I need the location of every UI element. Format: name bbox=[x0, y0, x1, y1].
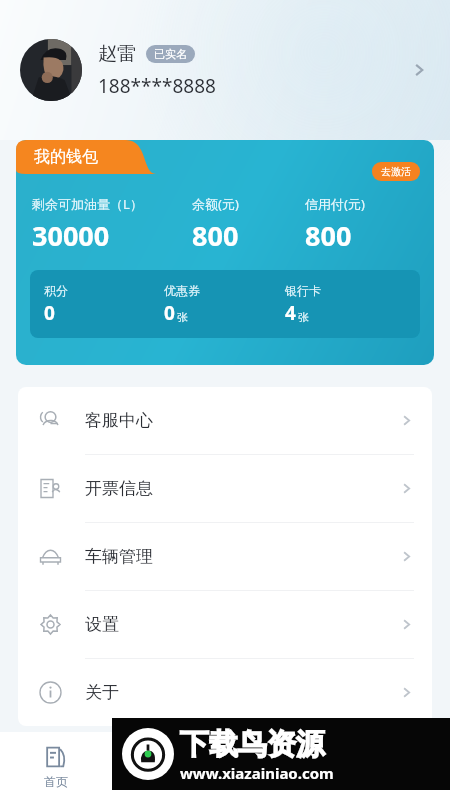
staticText: 4 bbox=[285, 300, 296, 326]
other: 个人资料 bbox=[404, 55, 434, 85]
button[interactable]: 设置 bbox=[18, 591, 432, 658]
staticText: 已实名 bbox=[154, 47, 187, 61]
button[interactable]: 赵雷 bbox=[0, 0, 450, 140]
button[interactable]: 首页 bbox=[0, 732, 112, 800]
button[interactable]: 关于 bbox=[18, 659, 432, 726]
staticText: 优惠券 bbox=[164, 283, 200, 298]
button[interactable]: 客服中心 bbox=[18, 387, 432, 454]
staticText: 客服中心 bbox=[85, 410, 153, 431]
staticText: 剩余可加油量（L） bbox=[32, 195, 143, 213]
staticText: 设置 bbox=[85, 614, 119, 635]
staticText: 银行卡 bbox=[285, 283, 321, 298]
staticText: 首页 bbox=[44, 774, 68, 789]
staticText: 0 bbox=[44, 300, 55, 326]
staticText: 地图 bbox=[156, 774, 180, 789]
staticText: 去激活 bbox=[381, 165, 411, 178]
staticText: 188****8888 bbox=[98, 73, 216, 99]
staticText: 行车 bbox=[269, 774, 293, 789]
staticText: 800 bbox=[192, 217, 239, 254]
button[interactable]: 车辆管理 bbox=[18, 523, 432, 590]
button[interactable]: 去激活 bbox=[16, 140, 434, 365]
staticText: 开票信息 bbox=[85, 478, 153, 499]
staticText: 30000 bbox=[32, 217, 110, 254]
button[interactable]: 开票信息 bbox=[18, 455, 432, 522]
button[interactable]: 我的 bbox=[337, 732, 450, 800]
staticText: 余额(元) bbox=[192, 195, 239, 213]
button[interactable]: 去激活 bbox=[372, 162, 420, 181]
staticText: 我的钱包 bbox=[34, 147, 98, 167]
button[interactable]: 地图 bbox=[112, 732, 224, 800]
staticText: 关于 bbox=[85, 682, 119, 703]
staticText: www.xiazainiao.com bbox=[180, 763, 334, 783]
staticText: 0 bbox=[164, 300, 175, 326]
staticText: 车辆管理 bbox=[85, 546, 153, 567]
staticText: 下载鸟资源 bbox=[180, 726, 325, 763]
button[interactable]: 行车 bbox=[224, 732, 337, 800]
staticText: 信用付(元) bbox=[305, 195, 365, 213]
staticText: 800 bbox=[305, 217, 352, 254]
staticText: 积分 bbox=[44, 283, 68, 298]
staticText: 张 bbox=[298, 310, 309, 324]
staticText: 赵雷 bbox=[98, 42, 136, 66]
staticText: 张 bbox=[177, 310, 188, 324]
